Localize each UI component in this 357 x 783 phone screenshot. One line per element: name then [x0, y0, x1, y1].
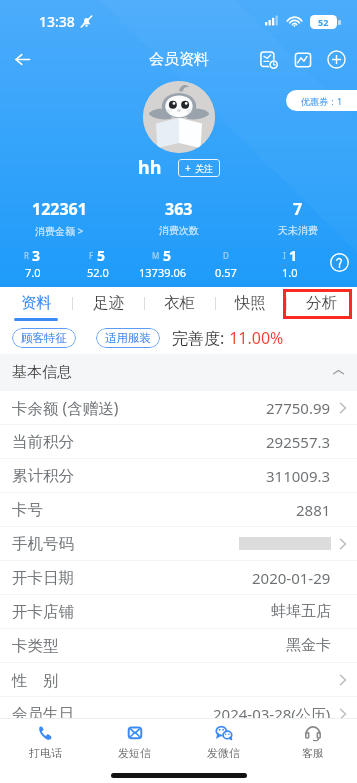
staticText: 蚌埠五店 — [271, 602, 331, 621]
button[interactable]: 122361 — [0, 198, 119, 238]
staticText: 消费金额 > — [35, 224, 84, 238]
staticText: 性 别 — [12, 669, 59, 690]
button[interactable]: 累计积分 — [0, 459, 357, 492]
button[interactable]: 性 别 — [0, 663, 357, 696]
staticText: 13:38 — [39, 12, 75, 31]
button[interactable]: 当前积分 — [0, 425, 357, 458]
staticText: D — [223, 250, 229, 261]
button[interactable]: 手机号码 — [0, 527, 357, 560]
button[interactable]: 资料 — [0, 287, 72, 322]
button[interactable]: 分析 — [286, 287, 357, 322]
staticText: 适用服装 — [105, 331, 151, 345]
staticText: 13739.06 — [139, 265, 186, 280]
staticText: 5 — [163, 246, 172, 263]
staticText: 关注 — [195, 163, 213, 174]
button[interactable]: 适用服装 — [96, 328, 160, 348]
button[interactable]: Add — [320, 43, 353, 76]
staticText: 11.00% — [225, 327, 284, 349]
button[interactable]: 优惠券：1 — [286, 90, 357, 111]
staticText: 3 — [32, 246, 41, 263]
button[interactable]: 卡余额 (含赠送) — [0, 391, 357, 424]
staticText: 客服 — [302, 746, 324, 760]
staticText: 足迹 — [93, 293, 124, 313]
button[interactable]: 顾客特征 — [12, 328, 76, 348]
button[interactable]: History — [252, 43, 285, 76]
staticText: 资料 — [21, 293, 52, 313]
staticText: 分析 — [306, 293, 337, 313]
staticText: 1.0 — [282, 265, 298, 280]
staticText: 311009.3 — [266, 466, 331, 486]
staticText: 基本信息 — [12, 363, 72, 382]
button[interactable]: 卡号 — [0, 493, 357, 526]
staticText: 卡号 — [12, 500, 43, 520]
staticText: M — [152, 250, 160, 261]
staticText: 消费次数 — [159, 224, 199, 237]
button[interactable]: Back — [4, 41, 40, 77]
button[interactable]: 会员生日 — [0, 697, 357, 730]
staticText: 52 — [318, 16, 329, 28]
button[interactable]: 363 — [119, 198, 238, 237]
staticText: 5 — [97, 246, 106, 263]
staticText: 363 — [165, 198, 193, 220]
staticText: + — [185, 161, 191, 175]
staticText: 7 — [293, 198, 303, 220]
staticText: 开卡日期 — [12, 568, 74, 588]
staticText: 快照 — [235, 293, 266, 313]
button[interactable]: 衣柜 — [144, 287, 215, 322]
staticText: 卡余额 (含赠送) — [12, 397, 119, 418]
button[interactable]: 发短信 — [90, 719, 179, 765]
button[interactable]: 发微信 — [179, 719, 268, 765]
staticText: 发短信 — [118, 746, 151, 760]
staticText: 当前积分 — [12, 432, 74, 452]
button[interactable]: 7 — [238, 198, 357, 237]
staticText: 52.0 — [87, 265, 109, 280]
staticText: 7.0 — [25, 265, 41, 280]
staticText: 会员资料 — [149, 50, 209, 69]
button[interactable]: Photos — [286, 43, 319, 76]
button[interactable]: 客服 — [268, 719, 357, 765]
staticText: 27750.99 — [266, 398, 331, 418]
staticText: 1 — [289, 246, 298, 263]
staticText: 天未消费 — [278, 224, 318, 237]
staticText: F — [89, 250, 94, 261]
button[interactable]: + — [178, 159, 220, 177]
staticText: 0.57 — [215, 265, 237, 280]
button[interactable]: 开卡店铺 — [0, 595, 357, 628]
staticText: 黑金卡 — [286, 636, 331, 655]
button[interactable]: Avatar — [143, 81, 215, 153]
staticText: 2024-03-28(公历) — [213, 704, 331, 724]
staticText: 完善度: — [172, 327, 225, 349]
button[interactable]: 打电话 — [0, 719, 90, 765]
button[interactable]: Help — [322, 246, 357, 278]
staticText: hh — [138, 155, 162, 180]
staticText: 发微信 — [207, 746, 240, 760]
button[interactable]: 快照 — [215, 287, 286, 322]
staticText: 会员生日 — [12, 704, 74, 724]
staticText: 手机号码 — [12, 534, 74, 554]
staticText: 累计积分 — [12, 466, 74, 486]
staticText: R — [24, 250, 29, 261]
staticText: I — [283, 250, 286, 261]
staticText: 卡类型 — [12, 636, 59, 656]
staticText: 292557.3 — [266, 432, 331, 452]
staticText: 衣柜 — [164, 293, 195, 313]
staticText: 顾客特征 — [21, 331, 67, 345]
staticText: 优惠券：1 — [301, 95, 343, 107]
button[interactable]: 卡类型 — [0, 629, 357, 662]
staticText: 2881 — [296, 500, 331, 520]
staticText: 开卡店铺 — [12, 602, 74, 622]
staticText: 打电话 — [29, 746, 62, 760]
button[interactable]: 开卡日期 — [0, 561, 357, 594]
staticText: 122361 — [32, 198, 87, 220]
staticText: 2020-01-29 — [252, 568, 331, 588]
button[interactable]: 足迹 — [72, 287, 144, 322]
